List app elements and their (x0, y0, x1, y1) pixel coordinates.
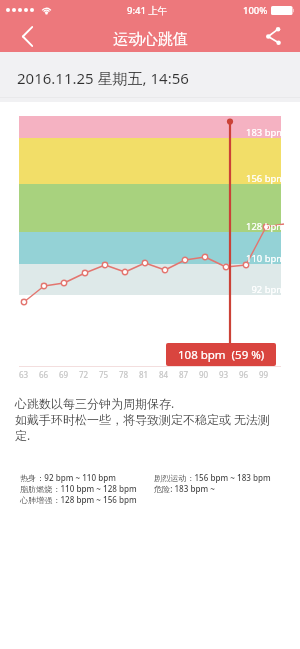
staticText: 81 (139, 369, 149, 380)
staticText: 75 (99, 369, 109, 380)
staticText: 92 bpm (202, 283, 285, 296)
staticText: 66 (39, 369, 49, 380)
staticText: 93 (219, 369, 229, 380)
staticText: 90 (199, 369, 209, 380)
staticText: 69 (59, 369, 69, 380)
staticText: 72 (79, 369, 89, 380)
staticText: 156 bpm (202, 172, 285, 185)
staticText: 84 (159, 369, 169, 380)
staticText: 183 bpm (202, 126, 285, 139)
staticText: 危险: 183 bpm ~ (154, 483, 215, 494)
staticText: 9:41 上午 (127, 4, 168, 17)
staticText: 99 (259, 369, 269, 380)
staticText: 108 bpm (59 %) (178, 347, 265, 363)
staticText: 2016.11.25 星期五, 14:56 (17, 68, 189, 88)
staticText: 78 (119, 369, 129, 380)
staticText: 110 bpm (202, 252, 285, 265)
button[interactable]: Share (252, 20, 296, 52)
staticText: 100% (243, 4, 268, 17)
staticText: 63 (19, 369, 29, 380)
staticText: 96 (239, 369, 249, 380)
staticText: 128 bpm (202, 220, 285, 233)
staticText: 运动心跳值 (113, 30, 188, 49)
staticText: 脂肪燃烧：110 bpm ~ 128 bpm (20, 483, 137, 494)
staticText: 热身：92 bpm ~ 110 bpm (20, 472, 116, 483)
staticText: 心肺增强：128 bpm ~ 156 bpm (20, 494, 137, 505)
staticText: 剧烈运动：156 bpm ~ 183 bpm (154, 472, 271, 483)
staticText: 87 (179, 369, 189, 380)
button[interactable]: 108 bpm (59 %) (166, 343, 276, 366)
button[interactable]: Back (5, 20, 49, 52)
staticText: 心跳数以每三分钟为周期保存. 如戴手环时松一些，将导致测定不稳定或 无法测定. (15, 395, 277, 443)
